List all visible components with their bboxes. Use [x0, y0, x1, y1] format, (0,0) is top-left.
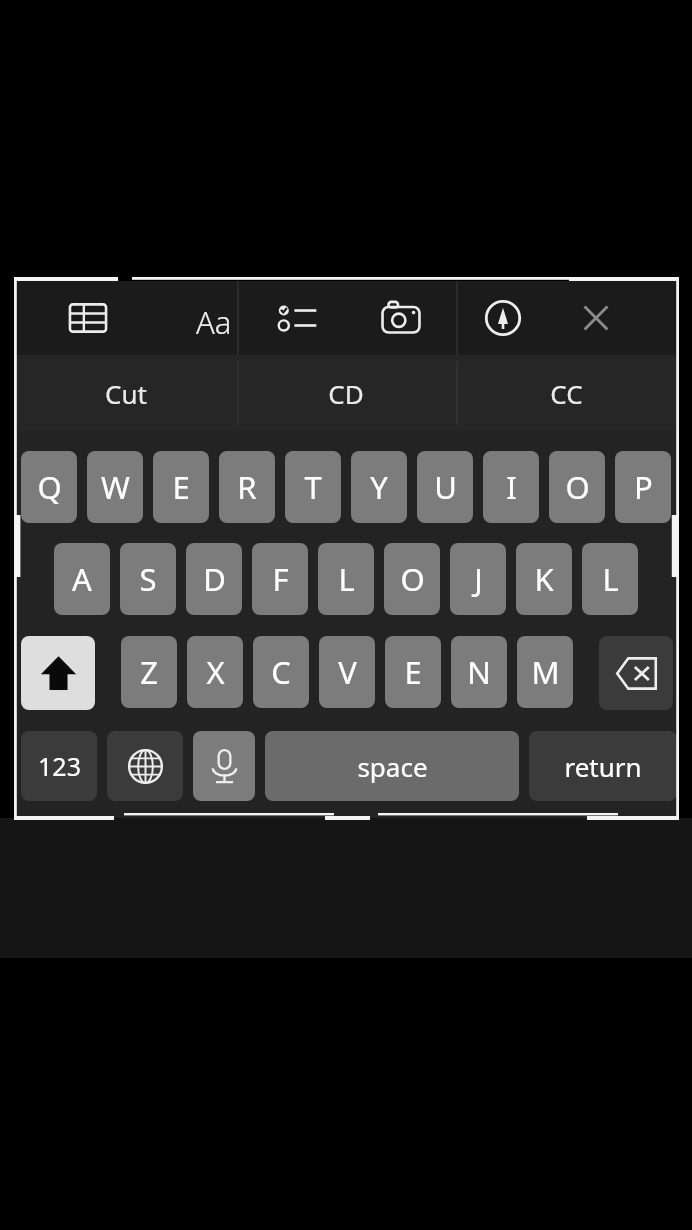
button[interactable]: P — [615, 451, 671, 523]
button[interactable]: R — [219, 451, 275, 523]
button[interactable]: space — [265, 731, 519, 801]
button[interactable]: U — [417, 451, 473, 523]
staticText: N — [467, 651, 491, 693]
button[interactable]: CC — [456, 355, 676, 431]
button[interactable]: return — [529, 731, 677, 801]
button[interactable]: A — [54, 543, 110, 615]
button[interactable]: Y — [351, 451, 407, 523]
staticText: 123 — [38, 749, 81, 783]
staticText: F — [272, 558, 289, 600]
button[interactable]: I — [483, 451, 539, 523]
button[interactable]: T — [285, 451, 341, 523]
button[interactable]: Shift — [21, 636, 95, 710]
staticText: E — [404, 651, 422, 693]
button[interactable]: Checklist — [270, 291, 324, 345]
staticText: E — [172, 466, 190, 508]
button[interactable]: J — [450, 543, 506, 615]
staticText: O — [400, 558, 425, 600]
staticText: W — [101, 466, 130, 508]
button[interactable]: Cut — [16, 355, 236, 431]
staticText: Aa — [196, 301, 232, 341]
staticText: CD — [328, 376, 364, 411]
button[interactable]: Markup — [476, 291, 530, 345]
button[interactable]: O — [384, 543, 440, 615]
staticText: Cut — [105, 376, 147, 411]
button[interactable]: Q — [21, 451, 77, 523]
button[interactable]: Dictate — [193, 731, 255, 801]
button[interactable]: M — [517, 636, 573, 708]
button[interactable]: Text format — [167, 291, 221, 345]
button[interactable]: CD — [236, 355, 456, 431]
staticText: C — [271, 651, 291, 693]
staticText: Y — [370, 466, 388, 508]
button[interactable]: Aa — [184, 301, 244, 341]
button[interactable]: Table — [61, 291, 115, 345]
staticText: return — [564, 749, 642, 784]
staticText: V — [338, 651, 357, 693]
button[interactable]: V — [319, 636, 375, 708]
button[interactable]: E — [153, 451, 209, 523]
staticText: D — [203, 558, 226, 600]
staticText: CC — [550, 376, 583, 411]
button[interactable]: X — [187, 636, 243, 708]
staticText: O — [565, 466, 590, 508]
staticText: I — [506, 466, 517, 508]
button[interactable]: E — [385, 636, 441, 708]
staticText: space — [357, 749, 428, 784]
button[interactable]: D — [186, 543, 242, 615]
button[interactable]: F — [252, 543, 308, 615]
button[interactable]: L — [318, 543, 374, 615]
button[interactable]: L — [582, 543, 638, 615]
button[interactable]: S — [120, 543, 176, 615]
staticText: A — [72, 558, 92, 600]
button[interactable]: 123 — [21, 731, 97, 801]
staticText: X — [206, 651, 225, 693]
staticText: Q — [37, 466, 62, 508]
button[interactable]: C — [253, 636, 309, 708]
staticText: Z — [140, 651, 158, 693]
staticText: P — [634, 466, 653, 508]
staticText: K — [534, 558, 554, 600]
button[interactable]: W — [87, 451, 143, 523]
staticText: L — [338, 558, 355, 600]
staticText: S — [139, 558, 157, 600]
staticText: R — [237, 466, 257, 508]
button[interactable]: Backspace — [599, 636, 673, 710]
staticText: J — [474, 558, 483, 600]
button[interactable]: N — [451, 636, 507, 708]
staticText: L — [602, 558, 619, 600]
staticText: U — [434, 466, 457, 508]
button[interactable]: Z — [121, 636, 177, 708]
staticText: T — [304, 466, 322, 508]
button[interactable]: Camera — [374, 291, 428, 345]
button[interactable]: Switch keyboard — [107, 731, 183, 801]
button[interactable]: K — [516, 543, 572, 615]
button[interactable]: Close — [569, 291, 623, 345]
button[interactable]: O — [549, 451, 605, 523]
staticText: M — [531, 651, 560, 693]
